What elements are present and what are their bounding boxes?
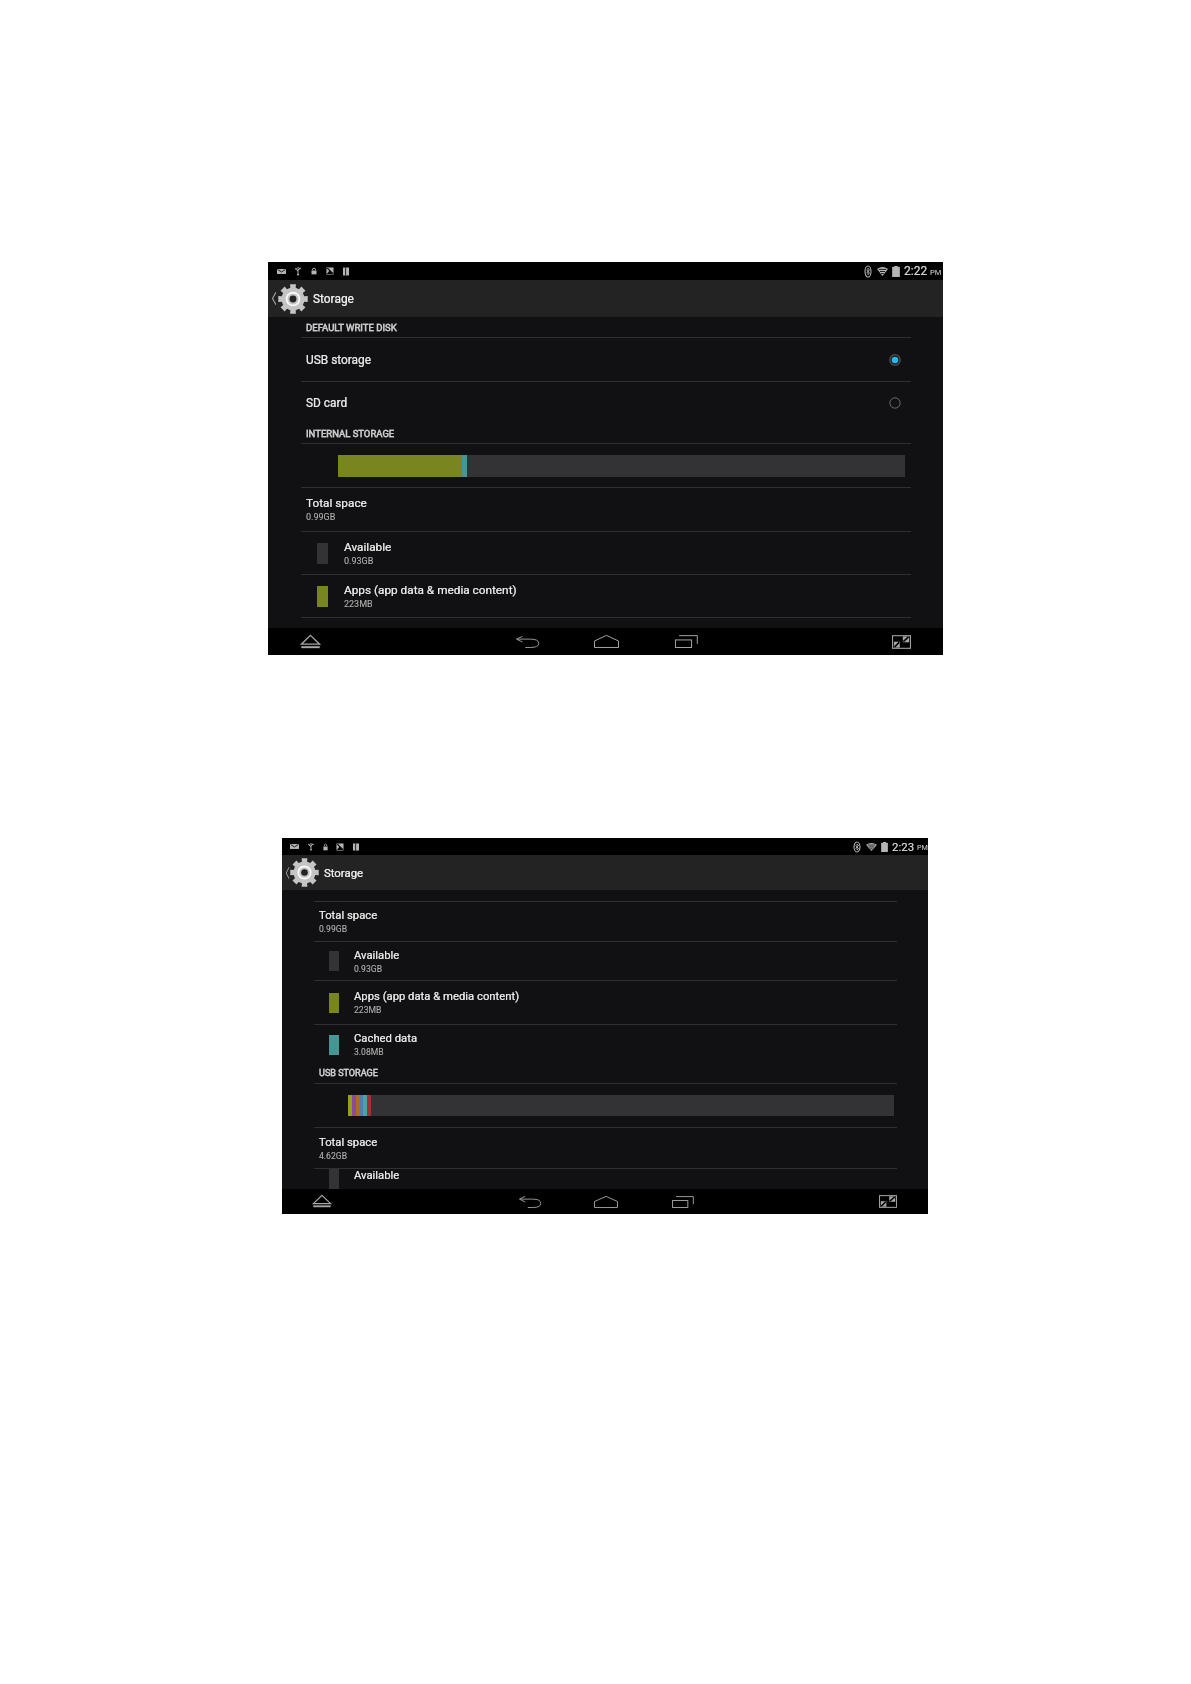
staticText: Storage (324, 866, 364, 879)
button[interactable]: Eject (295, 628, 325, 655)
button[interactable]: Apps (app data & media content) (268, 575, 943, 617)
staticText: 2:23 (892, 840, 915, 853)
button[interactable]: SD card (268, 382, 943, 424)
staticText: 0.99GB (319, 924, 348, 934)
button[interactable]: Available (268, 532, 943, 574)
staticText: 223MB (344, 599, 373, 610)
staticText: 0.93GB (344, 556, 374, 567)
button[interactable]: Recent apps (671, 628, 701, 655)
staticText: PM (917, 843, 928, 852)
staticText: 2:22 (904, 264, 928, 278)
staticText: SD card (306, 396, 348, 410)
staticText: PM (930, 268, 942, 277)
button[interactable]: Cached data (282, 1025, 928, 1064)
button[interactable]: Back (515, 1189, 544, 1214)
button[interactable]: Screenshot (888, 629, 914, 655)
button[interactable]: Screenshot (875, 1189, 900, 1214)
button[interactable]: Total space (282, 1128, 928, 1168)
staticText: 0.99GB (306, 512, 336, 523)
staticText: Total space (306, 496, 367, 510)
button[interactable]: Home (591, 628, 621, 655)
staticText: Available (354, 1169, 400, 1182)
staticText: Cached data (354, 1032, 418, 1045)
button[interactable]: Storage, navigate up (282, 855, 928, 890)
staticText: Apps (app data & media content) (354, 990, 520, 1003)
button[interactable]: Back (512, 628, 542, 655)
button[interactable]: Total space (282, 902, 928, 941)
button[interactable]: Total space (268, 488, 943, 531)
staticText: 223MB (354, 1005, 382, 1015)
button[interactable]: Available (282, 942, 928, 980)
staticText: Total space (319, 1136, 378, 1149)
button[interactable]: USB storage (268, 338, 943, 381)
staticText: 4.62GB (319, 1151, 348, 1161)
button[interactable]: Recent apps (668, 1189, 697, 1214)
button[interactable]: Home (591, 1189, 620, 1214)
button[interactable]: Apps (app data & media content) (282, 981, 928, 1024)
button[interactable]: Available (282, 1169, 928, 1189)
staticText: Available (354, 949, 400, 962)
staticText: Storage (313, 292, 354, 306)
staticText: Apps (app data & media content) (344, 583, 517, 597)
staticText: INTERNAL STORAGE (306, 428, 395, 439)
button[interactable]: Eject (307, 1189, 336, 1214)
staticText: Total space (319, 909, 378, 922)
staticText: USB storage (306, 353, 372, 367)
staticText: 3.08MB (354, 1047, 384, 1057)
staticText: 0.93GB (354, 964, 383, 974)
staticText: Available (344, 540, 392, 554)
button[interactable]: Storage, navigate up (268, 280, 943, 317)
staticText: DEFAULT WRITE DISK (306, 322, 397, 333)
staticText: USB STORAGE (319, 1068, 378, 1079)
